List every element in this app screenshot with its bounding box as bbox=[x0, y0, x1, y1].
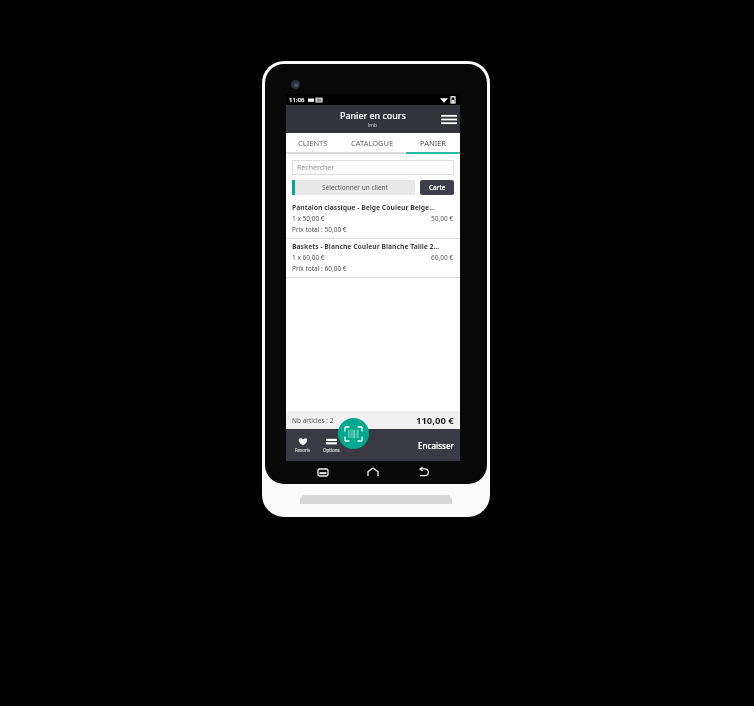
staticText: 1 x 50,00 € bbox=[292, 214, 325, 223]
staticText: 1 x 60,00 € bbox=[292, 253, 325, 262]
button[interactable]: Favoris bbox=[293, 437, 313, 453]
staticText: Options bbox=[323, 447, 340, 453]
button[interactable]: CLIENTS bbox=[286, 133, 339, 152]
staticText: Sélectionner un client bbox=[322, 183, 388, 192]
button[interactable]: PANIER bbox=[406, 133, 460, 152]
staticText: Prix total : 50,00 € bbox=[292, 225, 347, 234]
button[interactable]: Scan barcode bbox=[338, 418, 369, 449]
button[interactable]: Sélectionner un client bbox=[292, 180, 415, 195]
staticText: 50,00 € bbox=[431, 214, 454, 223]
button[interactable]: CATALOGUE bbox=[339, 133, 406, 152]
staticText: 110,00 € bbox=[416, 414, 454, 427]
button[interactable]: Carte bbox=[420, 180, 454, 195]
button[interactable]: Menu bbox=[438, 105, 460, 133]
button[interactable]: Pantalon classique - Beige Couleur Beige… bbox=[286, 200, 460, 238]
button[interactable]: Baskets - Blanche Couleur Blanche Taille… bbox=[286, 239, 460, 277]
staticText: Panier en cours bbox=[340, 109, 406, 121]
staticText: CATALOGUE bbox=[351, 138, 394, 148]
staticText: PANIER bbox=[420, 138, 447, 148]
staticText: Baskets - Blanche Couleur Blanche Taille… bbox=[292, 242, 440, 251]
staticText: Prix total : 60,00 € bbox=[292, 264, 347, 273]
staticText: lmb bbox=[368, 122, 378, 129]
button[interactable]: Rechercher bbox=[292, 160, 454, 175]
button[interactable]: Recent apps bbox=[309, 461, 337, 483]
staticText: Encaisser bbox=[418, 440, 454, 451]
staticText: Carte bbox=[429, 183, 446, 192]
staticText: Nb articles : 2 bbox=[292, 416, 334, 425]
staticText: 60,00 € bbox=[431, 253, 454, 262]
button[interactable]: Encaisser bbox=[418, 440, 454, 451]
staticText: 11:06 bbox=[289, 96, 305, 104]
staticText: Favoris bbox=[295, 447, 311, 453]
staticText: CLIENTS bbox=[298, 138, 328, 148]
button[interactable]: Options bbox=[321, 437, 342, 453]
button[interactable]: Home bbox=[359, 461, 387, 483]
staticText: Pantalon classique - Beige Couleur Beige… bbox=[292, 203, 435, 212]
button[interactable]: Back bbox=[410, 461, 438, 483]
staticText: Rechercher bbox=[297, 163, 335, 173]
